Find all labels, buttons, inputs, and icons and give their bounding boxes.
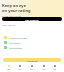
button[interactable]: Approved: [0, 40, 64, 45]
button[interactable]: Nav: [6, 65, 12, 71]
button[interactable]: Get started: [2, 17, 62, 21]
staticText: Keep an eye: [2, 3, 27, 8]
button[interactable]: Nav: [17, 65, 23, 71]
staticText: Continue: [27, 59, 38, 62]
staticText: Tab: [53, 68, 57, 71]
staticText: Your rating: [2, 23, 16, 26]
button[interactable]: Continue: [3, 58, 61, 62]
staticText: Get started: [25, 18, 39, 21]
staticText: Approved: [9, 41, 21, 44]
staticText: Tab: [30, 68, 34, 71]
button[interactable]: Completed: [0, 45, 64, 50]
button[interactable]: Nav: [41, 65, 47, 71]
staticText: Completed: [9, 46, 22, 49]
staticText: Pending review: [9, 36, 27, 39]
staticText: Tab: [18, 68, 22, 71]
staticText: on your rating: [2, 8, 31, 13]
staticText: Tab: [42, 68, 46, 71]
button[interactable]: Pending review: [0, 35, 64, 40]
staticText: Track your score: [2, 14, 22, 17]
button[interactable]: Nav: [52, 65, 58, 71]
staticText: Tab: [7, 68, 11, 71]
button[interactable]: Nav: [29, 65, 35, 71]
